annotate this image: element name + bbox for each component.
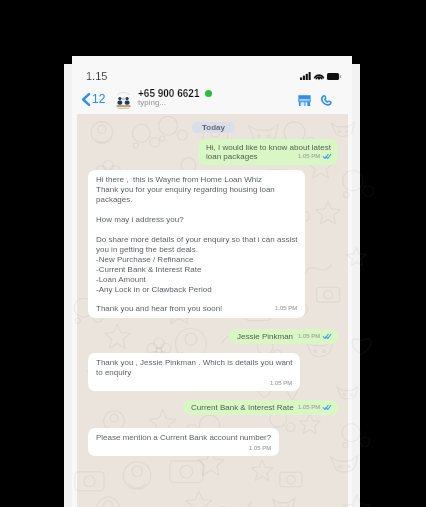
button[interactable]: Please mention a Current Bank account nu…: [88, 428, 279, 456]
button[interactable]: Contact profile: [114, 91, 133, 110]
staticText: 12: [92, 92, 106, 105]
staticText: Jessie Pinkman: [237, 332, 294, 341]
staticText: Current Bank & Interest Rate: [191, 403, 294, 412]
button[interactable]: Today: [192, 122, 235, 133]
staticText: Hi, I would like to know about latest: [206, 143, 331, 152]
staticText: 1.05 PM: [249, 445, 272, 452]
staticText: 1.05 PM: [270, 380, 293, 387]
button[interactable]: Call: [316, 90, 336, 110]
staticText: Thank you and hear from you soon!: [96, 304, 223, 313]
button[interactable]: Jessie Pinkman: [229, 329, 338, 344]
staticText: Today: [202, 123, 225, 132]
staticText: +65 900 6621: [138, 88, 200, 99]
staticText: 1.05 PM: [298, 333, 321, 340]
staticText: loan packages: [206, 152, 258, 161]
button[interactable]: Hi there , this is Wayne from Home Loan …: [88, 170, 305, 318]
button[interactable]: Back, 12 unread: [79, 91, 109, 108]
staticText: 1.15: [86, 70, 108, 82]
button[interactable]: Hi, I would like to know about latest: [198, 139, 338, 165]
staticText: Hi there , this is Wayne from Home Loan …: [96, 175, 298, 304]
staticText: Please mention a Current Bank account nu…: [96, 433, 272, 442]
staticText: Thank you , Jessie Pinkman . Which is de…: [96, 358, 293, 377]
button[interactable]: Business catalog: [294, 90, 314, 110]
button[interactable]: Current Bank & Interest Rate: [183, 400, 338, 415]
staticText: 1.05 PM: [298, 404, 321, 411]
staticText: typing...: [138, 98, 167, 107]
staticText: 1.05 PM: [298, 153, 321, 160]
button[interactable]: Thank you , Jessie Pinkman . Which is de…: [88, 353, 300, 391]
staticText: 1.05 PM: [275, 305, 298, 312]
